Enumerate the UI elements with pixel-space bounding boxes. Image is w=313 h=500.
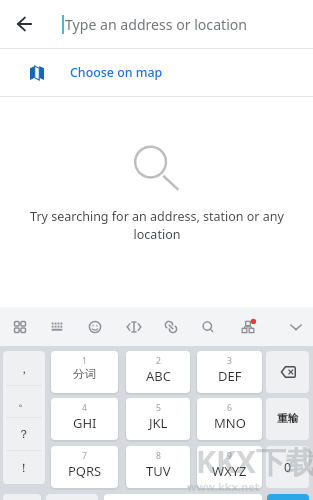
button[interactable]: Translate bbox=[117, 307, 151, 346]
staticText: Choose on map bbox=[70, 64, 163, 81]
staticText: ， bbox=[18, 361, 30, 376]
staticText: 1 bbox=[82, 355, 87, 367]
button[interactable]: ？ bbox=[3, 417, 45, 450]
staticText: TUV bbox=[146, 462, 171, 480]
button[interactable]: ！ bbox=[3, 450, 45, 484]
button[interactable]: Backspace bbox=[266, 351, 309, 393]
staticText: PQRS bbox=[68, 462, 102, 480]
button[interactable]: Enter bbox=[267, 494, 309, 500]
button[interactable]: Collapse keyboard bbox=[279, 307, 313, 346]
staticText: 5 bbox=[156, 402, 161, 414]
staticText: ！ bbox=[18, 460, 30, 475]
staticText: 8 bbox=[156, 450, 161, 462]
button[interactable]: 5 bbox=[126, 398, 190, 440]
button[interactable]: Clipboard bbox=[154, 307, 188, 346]
staticText: 。 bbox=[18, 394, 30, 409]
staticText: MNO bbox=[214, 414, 246, 432]
button[interactable]: 4 bbox=[51, 398, 118, 440]
staticText: 2 bbox=[156, 355, 161, 367]
staticText: 3 bbox=[227, 355, 232, 367]
button[interactable]: Emoji bbox=[78, 307, 112, 346]
staticText: ？ bbox=[18, 426, 30, 441]
staticText: DEF bbox=[218, 367, 242, 385]
button[interactable]: Symbols bbox=[3, 494, 41, 500]
button[interactable]: Keyboard bbox=[40, 307, 74, 346]
staticText: JKL bbox=[149, 414, 168, 432]
button[interactable]: 重输 bbox=[266, 398, 309, 440]
button[interactable]: 0 bbox=[266, 446, 309, 488]
button[interactable]: Tools bbox=[231, 307, 265, 346]
button[interactable]: 。 bbox=[3, 385, 45, 417]
staticText: 重输 bbox=[277, 412, 299, 426]
button[interactable]: 3 bbox=[197, 351, 262, 393]
staticText: 分词 bbox=[73, 367, 96, 381]
button[interactable]: 7 bbox=[51, 446, 118, 488]
staticText: www.kkx.net bbox=[187, 479, 260, 494]
button[interactable]: 8 bbox=[126, 446, 190, 488]
staticText: 6 bbox=[227, 402, 232, 414]
button[interactable]: 2 bbox=[126, 351, 190, 393]
staticText: GHI bbox=[73, 414, 97, 432]
staticText: Try searching for an address, station or… bbox=[29, 208, 285, 242]
staticText: 4 bbox=[82, 402, 87, 414]
button[interactable]: Search bbox=[191, 307, 225, 346]
button[interactable]: 1 bbox=[51, 351, 118, 393]
button[interactable]: Choose on map bbox=[0, 49, 313, 96]
staticText: WXYZ bbox=[212, 462, 247, 480]
button[interactable]: 6 bbox=[197, 398, 262, 440]
staticText: ABC bbox=[146, 367, 171, 385]
button[interactable]: 9 bbox=[197, 446, 262, 488]
staticText: 0 bbox=[284, 459, 292, 476]
button[interactable]: Back bbox=[8, 7, 41, 40]
button[interactable]: ， bbox=[3, 351, 45, 385]
staticText: Type an address or location bbox=[65, 15, 248, 34]
staticText: 7 bbox=[82, 450, 87, 462]
staticText: 9 bbox=[227, 450, 232, 462]
staticText: KKX下载 bbox=[196, 441, 313, 482]
button[interactable]: Grid bbox=[3, 307, 37, 346]
